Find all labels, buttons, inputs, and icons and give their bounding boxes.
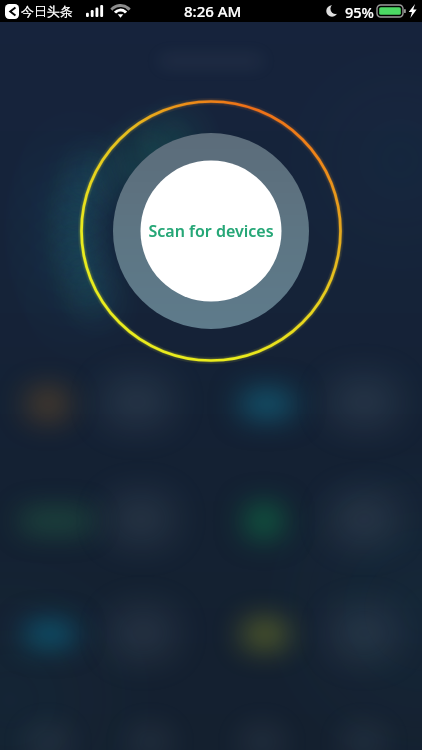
button[interactable]: Scan for devices [141, 196, 281, 266]
staticText: 95% [345, 2, 374, 22]
staticText: 今日头条 [21, 3, 73, 19]
staticText: Scan for devices [148, 220, 274, 242]
staticText: 8:26 AM [184, 1, 242, 21]
button[interactable]: Back [5, 4, 19, 19]
